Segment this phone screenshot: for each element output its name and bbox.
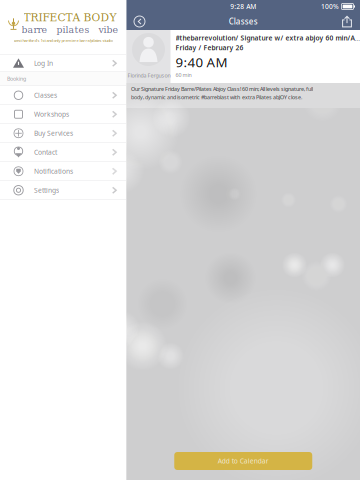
staticText: Our Signature Friday Barre/Pilates Abjoy…: [131, 85, 313, 93]
button[interactable]: Settings: [0, 181, 126, 200]
button[interactable]: Contact: [0, 143, 126, 162]
button[interactable]: Workshops: [0, 105, 126, 124]
staticText: Classes: [229, 16, 258, 27]
staticText: Contact: [34, 148, 57, 157]
staticText: west hartford's 1st and only premiere ba…: [13, 38, 112, 43]
staticText: 9:40 AM: [175, 53, 227, 71]
staticText: 9:28 AM: [230, 2, 256, 11]
button[interactable]: Log In: [0, 55, 126, 72]
button[interactable]: Add to Calendar: [174, 452, 312, 470]
staticText: Booking: [7, 75, 26, 82]
button[interactable]: Buy Services: [0, 124, 126, 143]
staticText: barre pilates vibe: [21, 24, 118, 35]
staticText: Florinda Ferguson: [127, 72, 170, 79]
staticText: Friday / February 26: [175, 43, 243, 52]
staticText: Workshops: [34, 110, 69, 119]
staticText: Classes: [34, 91, 57, 100]
staticText: Settings: [34, 186, 59, 195]
button[interactable]: Classes: [0, 86, 126, 105]
staticText: Buy Services: [34, 129, 73, 138]
staticText: Notifications: [34, 167, 73, 176]
staticText: #thebarrevolution/ Signature w/ extra ab…: [175, 33, 360, 42]
button[interactable]: Notifications: [0, 162, 126, 181]
staticText: TRIFECTA BODY: [23, 11, 116, 24]
button[interactable]: Share: [334, 13, 360, 30]
staticText: Add to Calendar: [218, 457, 269, 465]
button[interactable]: Back: [126, 13, 152, 30]
staticText: body, dynamic and isometric #barreblast …: [131, 94, 302, 101]
staticText: 100%: [321, 2, 339, 11]
staticText: 60 min: [175, 71, 191, 78]
staticText: Log In: [34, 59, 53, 68]
